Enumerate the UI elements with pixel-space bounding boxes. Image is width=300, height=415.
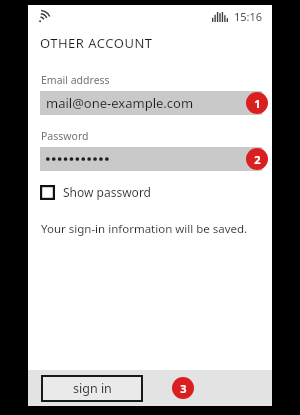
button[interactable]: mail@one-example.com bbox=[40, 91, 262, 115]
button[interactable]: sign in bbox=[41, 375, 143, 402]
staticText: Password bbox=[41, 129, 89, 143]
staticText: sign in bbox=[73, 380, 112, 397]
staticText: Show password bbox=[63, 184, 151, 200]
other: Signal strength bbox=[212, 12, 228, 22]
button[interactable]: Show password bbox=[40, 181, 151, 203]
staticText: 15:16 bbox=[234, 9, 263, 24]
staticText: 2 bbox=[254, 152, 261, 167]
staticText: Email address bbox=[41, 73, 110, 87]
staticText: 1 bbox=[254, 96, 261, 111]
other: Wi-Fi bbox=[38, 10, 51, 23]
staticText: 3 bbox=[180, 381, 187, 396]
staticText: mail@one-example.com bbox=[46, 94, 194, 112]
staticText: OTHER ACCOUNT bbox=[40, 34, 153, 52]
button[interactable]: 2 bbox=[40, 147, 262, 171]
staticText: Your sign-in information will be saved. bbox=[41, 221, 248, 237]
